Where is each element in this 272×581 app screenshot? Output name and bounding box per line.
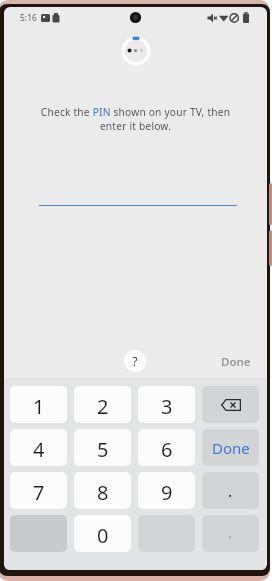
staticText: . — [228, 480, 233, 502]
staticText: 6 — [161, 436, 173, 463]
button[interactable] — [202, 386, 259, 423]
staticText: 0 — [97, 522, 109, 549]
button[interactable]: Done — [202, 429, 259, 466]
button[interactable]: 4 — [10, 429, 67, 466]
button[interactable]: 6 — [138, 429, 195, 466]
staticText: , — [229, 527, 232, 541]
staticText: ? — [132, 352, 138, 370]
staticText: enter it below. — [4, 119, 267, 133]
staticText: 7 — [33, 479, 45, 506]
button[interactable]: 5 — [74, 429, 131, 466]
button[interactable]: 8 — [74, 472, 131, 509]
staticText: 9 — [161, 479, 173, 506]
staticText: 2 — [97, 393, 109, 420]
button[interactable]: 3 — [138, 386, 195, 423]
staticText: 8 — [97, 479, 109, 506]
staticText: 3 — [161, 393, 173, 420]
staticText: 4 — [33, 436, 45, 463]
button[interactable]: ? — [124, 350, 146, 372]
staticText: Done — [212, 438, 250, 458]
button[interactable]: Done — [204, 352, 251, 372]
staticText: 5:16 — [20, 12, 37, 24]
staticText: Done — [221, 354, 251, 370]
staticText: 1 — [33, 393, 45, 420]
button[interactable]: . — [202, 472, 259, 509]
staticText: Check the PIN shown on your TV, then — [4, 105, 267, 119]
button[interactable]: 0 — [74, 515, 131, 552]
button[interactable]: 9 — [138, 472, 195, 509]
staticText: 5 — [97, 436, 109, 463]
button[interactable]: 2 — [74, 386, 131, 423]
button[interactable]: 1 — [10, 386, 67, 423]
button[interactable]: 7 — [10, 472, 67, 509]
